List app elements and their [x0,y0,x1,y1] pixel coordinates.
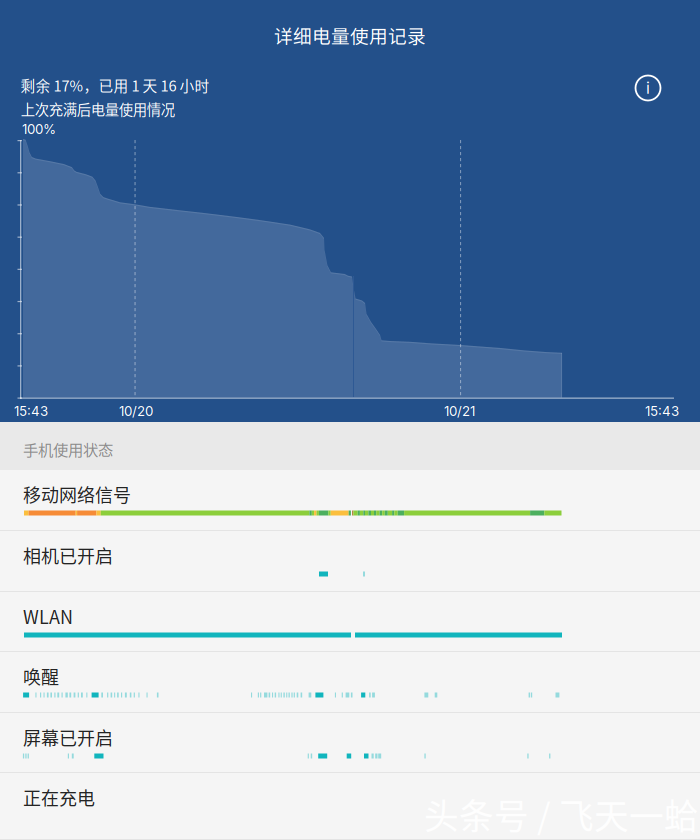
staticText: 100% [22,121,56,137]
staticText: 剩余 17%，已用 1 天 16 小时 [20,75,209,96]
button[interactable]: 相机已开启 [0,531,700,592]
staticText: 详细电量使用记录 [274,22,426,49]
staticText: 相机已开启 [23,542,113,568]
staticText: WLAN [23,603,73,629]
button[interactable]: 屏幕已开启 [0,713,700,773]
button[interactable]: 正在充电 [0,773,700,840]
staticText: 移动网络信号 [23,481,131,507]
button[interactable]: WLAN [0,592,700,652]
staticText: 上次充满后电量使用情况 [21,99,175,119]
staticText: 15:43 [645,403,679,419]
button[interactable]: 移动网络信号 [0,470,700,531]
staticText: i [646,78,650,98]
staticText: 10/20 [119,403,153,419]
staticText: 10/21 [444,403,475,419]
staticText: 屏幕已开启 [23,724,113,750]
staticText: 唤醒 [23,663,59,689]
button[interactable]: Info [626,66,670,110]
staticText: 15:43 [14,403,48,419]
staticText: 正在充电 [23,784,95,810]
button[interactable]: 唤醒 [0,652,700,713]
staticText: 手机使用状态 [23,438,113,460]
